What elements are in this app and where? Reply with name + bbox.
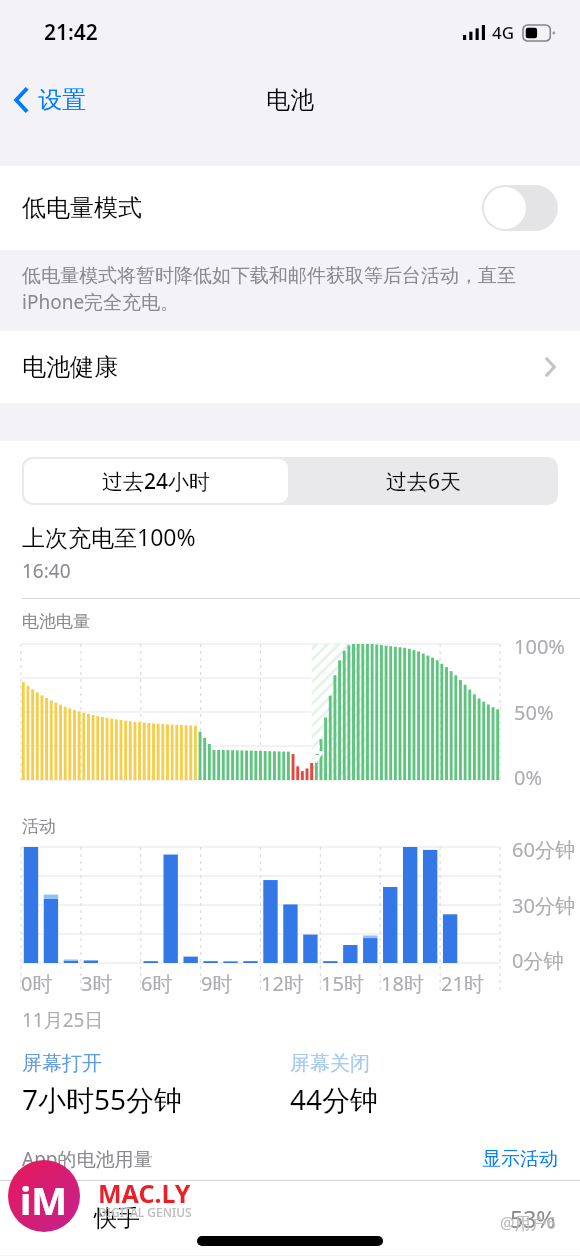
staticText: 上次充电至100% bbox=[22, 521, 196, 552]
staticText: 电池电量 bbox=[22, 611, 90, 632]
button[interactable]: 显示活动 bbox=[482, 1147, 558, 1171]
staticText: 3时 bbox=[81, 970, 113, 997]
staticText: 15时 bbox=[321, 970, 364, 997]
staticText: 0时 bbox=[21, 970, 53, 997]
button[interactable]: 低电量模式 bbox=[0, 166, 580, 250]
staticText: 6时 bbox=[141, 970, 173, 997]
staticText: 活动 bbox=[22, 816, 56, 837]
staticText: 16:40 bbox=[22, 558, 71, 584]
staticText: 低电量模式 bbox=[22, 193, 142, 223]
staticText: App的电池用量 bbox=[22, 1146, 153, 1172]
staticText: 快手 bbox=[94, 1204, 140, 1233]
staticText: 21时 bbox=[441, 970, 484, 997]
staticText: 7小时55分钟 bbox=[22, 1080, 183, 1118]
staticText: 11月25日 bbox=[22, 1007, 104, 1033]
staticText: 屏幕打开 bbox=[22, 1051, 102, 1076]
button[interactable]: 过去24小时 bbox=[24, 459, 288, 503]
staticText: MAC.LY bbox=[98, 1176, 191, 1210]
staticText: 0分钟 bbox=[512, 947, 564, 974]
staticText: 设置 bbox=[38, 85, 86, 115]
staticText: 屏幕关闭 bbox=[290, 1051, 370, 1076]
staticText: 60分钟 bbox=[512, 836, 575, 863]
staticText: iM bbox=[20, 1174, 68, 1226]
staticText: @用户6 bbox=[500, 1212, 556, 1234]
staticText: 12时 bbox=[261, 970, 304, 997]
staticText: 18时 bbox=[381, 970, 424, 997]
staticText: 4G bbox=[492, 21, 515, 44]
staticText: 9时 bbox=[201, 970, 233, 997]
staticText: 44分钟 bbox=[290, 1080, 379, 1118]
staticText: 低电量模式将暂时降低如下载和邮件获取等后台活动，直至 iPhone完全充电。 bbox=[22, 264, 516, 315]
staticText: 0% bbox=[514, 764, 543, 791]
staticText: 30分钟 bbox=[512, 892, 575, 919]
button[interactable]: 设置 bbox=[0, 77, 98, 123]
staticText: 100% bbox=[514, 633, 565, 660]
staticText: 21:42 bbox=[44, 18, 98, 47]
button[interactable]: 过去6天 bbox=[290, 457, 558, 505]
staticText: 过去24小时 bbox=[102, 467, 211, 496]
staticText: 电池 bbox=[266, 85, 314, 115]
button[interactable]: 电池健康 bbox=[0, 331, 580, 403]
staticText: DIGITAL GENIUS bbox=[98, 1204, 192, 1220]
button[interactable]: 快手 bbox=[0, 1181, 580, 1255]
staticText: 50% bbox=[514, 699, 554, 726]
staticText: 53% bbox=[510, 1203, 556, 1234]
button[interactable]: 低电量模式开关 bbox=[482, 185, 558, 231]
staticText: 过去6天 bbox=[386, 467, 462, 496]
staticText: 电池健康 bbox=[22, 352, 118, 382]
